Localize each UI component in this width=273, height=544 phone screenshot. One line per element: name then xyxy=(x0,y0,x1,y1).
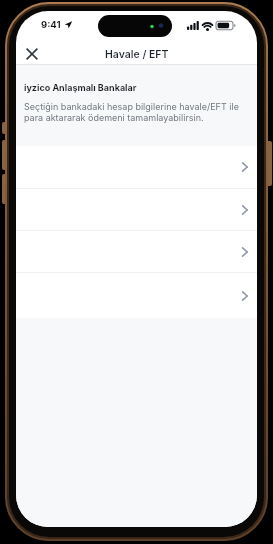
button[interactable] xyxy=(16,189,257,230)
button[interactable] xyxy=(16,273,257,318)
button[interactable] xyxy=(16,231,257,272)
button[interactable] xyxy=(25,47,39,61)
button[interactable] xyxy=(16,146,257,188)
staticText: Seçtiğin bankadaki hesap bilgilerine hav… xyxy=(24,101,239,123)
staticText: Havale / EFT xyxy=(105,48,169,61)
staticText: 9:41 xyxy=(41,19,61,30)
staticText: iyzico Anlaşmalı Bankalar xyxy=(24,82,137,93)
